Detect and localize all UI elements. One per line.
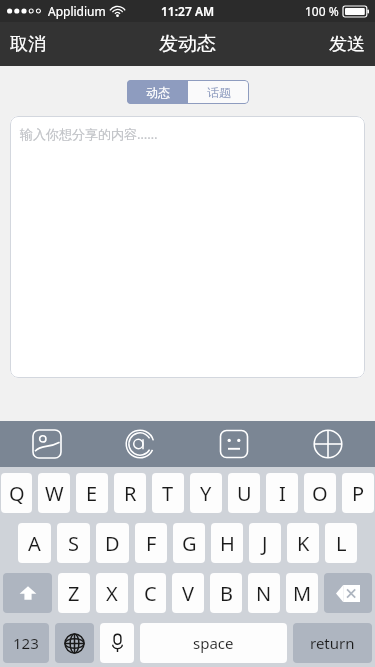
button[interactable]: 输入你想分享的内容……: [10, 116, 365, 378]
button[interactable]: I: [266, 473, 298, 513]
button[interactable]: S: [57, 523, 90, 563]
button[interactable]: Backspace: [324, 573, 372, 613]
button[interactable]: F: [135, 523, 167, 563]
button[interactable]: O: [304, 473, 336, 513]
button[interactable]: Dictation: [100, 623, 134, 663]
button[interactable]: H: [211, 523, 243, 563]
button[interactable]: G: [173, 523, 205, 563]
staticText: 输入你想分享的内容……: [20, 125, 158, 143]
staticText: 123: [13, 633, 39, 653]
button[interactable]: return: [293, 623, 372, 663]
button[interactable]: E: [76, 473, 108, 513]
button[interactable]: N: [248, 573, 280, 613]
staticText: P: [352, 480, 365, 507]
staticText: 11:27 AM: [161, 3, 215, 19]
button[interactable]: Q: [1, 473, 32, 513]
staticText: K: [297, 530, 310, 557]
button[interactable]: 123: [3, 623, 49, 663]
button[interactable]: L: [325, 523, 357, 563]
button[interactable]: Insert emoji: [187, 421, 281, 467]
staticText: H: [220, 530, 235, 557]
staticText: F: [146, 530, 157, 557]
button[interactable]: D: [96, 523, 129, 563]
staticText: X: [106, 580, 118, 607]
button[interactable]: Shift: [3, 573, 52, 613]
staticText: T: [162, 480, 174, 507]
staticText: J: [262, 530, 268, 557]
button[interactable]: 发送: [319, 22, 375, 66]
button[interactable]: 取消: [0, 22, 56, 66]
button[interactable]: K: [287, 523, 319, 563]
button[interactable]: space: [140, 623, 287, 663]
button[interactable]: A: [18, 523, 51, 563]
staticText: I: [279, 480, 286, 507]
staticText: G: [182, 530, 197, 557]
staticText: U: [237, 480, 252, 507]
staticText: return: [310, 633, 355, 653]
staticText: Z: [68, 580, 80, 607]
staticText: B: [220, 580, 233, 607]
button[interactable]: R: [114, 473, 146, 513]
staticText: W: [45, 480, 64, 507]
button[interactable]: Y: [190, 473, 222, 513]
staticText: S: [68, 530, 79, 557]
button[interactable]: U: [228, 473, 260, 513]
button[interactable]: X: [96, 573, 128, 613]
staticText: 动态: [146, 85, 170, 100]
staticText: 话题: [207, 85, 231, 100]
button[interactable]: T: [152, 473, 184, 513]
staticText: Q: [9, 480, 25, 507]
staticText: L: [336, 530, 347, 557]
button[interactable]: B: [210, 573, 242, 613]
button[interactable]: M: [286, 573, 318, 613]
staticText: Y: [200, 480, 212, 507]
staticText: space: [193, 633, 234, 653]
button[interactable]: More options: [281, 421, 375, 467]
staticText: D: [105, 530, 120, 557]
button[interactable]: V: [172, 573, 204, 613]
staticText: E: [86, 480, 98, 507]
button[interactable]: Add photo: [0, 421, 93, 467]
staticText: 100 %: [305, 3, 339, 19]
staticText: N: [256, 580, 272, 607]
staticText: Applidium: [48, 3, 106, 19]
button[interactable]: Z: [58, 573, 90, 613]
button[interactable]: 动态: [127, 80, 188, 104]
staticText: R: [124, 480, 137, 507]
staticText: O: [312, 480, 328, 507]
staticText: C: [144, 580, 157, 607]
button[interactable]: C: [134, 573, 166, 613]
staticText: 发动态: [159, 32, 216, 56]
button[interactable]: Mention someone: [93, 421, 187, 467]
button[interactable]: P: [342, 473, 374, 513]
staticText: 发送: [329, 33, 365, 56]
button[interactable]: Switch keyboard language: [55, 623, 94, 663]
staticText: 取消: [10, 33, 46, 56]
staticText: M: [293, 580, 312, 607]
staticText: A: [28, 530, 41, 557]
button[interactable]: J: [249, 523, 281, 563]
staticText: V: [182, 580, 194, 607]
button[interactable]: 话题: [188, 80, 249, 104]
button[interactable]: W: [38, 473, 70, 513]
